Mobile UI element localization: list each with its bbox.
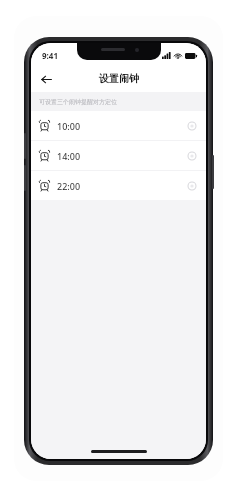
- button[interactable]: Back: [35, 68, 57, 90]
- button[interactable]: 14:00: [31, 141, 206, 170]
- staticText: 设置闹钟: [99, 72, 139, 85]
- button[interactable]: Edit alarm: [186, 150, 198, 162]
- button[interactable]: Edit alarm: [186, 180, 198, 192]
- staticText: 10:00: [57, 120, 81, 132]
- button[interactable]: 10:00: [31, 111, 206, 140]
- button[interactable]: Edit alarm: [186, 120, 198, 132]
- staticText: 22:00: [57, 180, 81, 192]
- staticText: 9:41: [42, 50, 58, 61]
- staticText: 可设置三个闹钟提醒对方定位: [39, 98, 117, 106]
- staticText: 14:00: [57, 150, 81, 162]
- button[interactable]: 22:00: [31, 171, 206, 200]
